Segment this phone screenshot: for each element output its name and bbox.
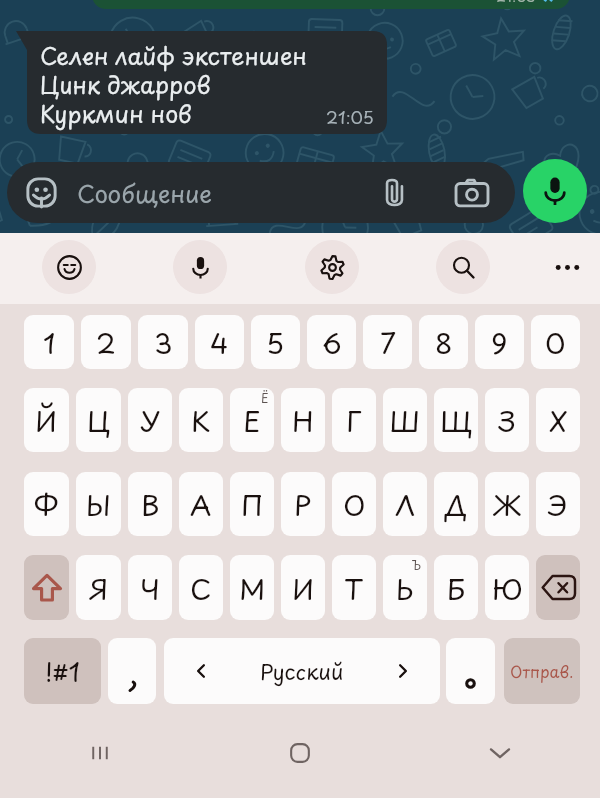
button[interactable]: Н [281, 388, 325, 452]
button[interactable]: 7 [363, 315, 412, 369]
staticText: О [343, 483, 366, 525]
button[interactable]: !#1 [24, 638, 101, 704]
button[interactable]: Голосовое сообщение [523, 159, 587, 223]
staticText: 6 [322, 321, 342, 363]
button[interactable]: 5 [251, 315, 300, 369]
button[interactable]: Ж [485, 472, 529, 536]
button[interactable]: Назад [400, 715, 600, 791]
button[interactable]: Ч [128, 555, 172, 620]
button[interactable]: 2 [81, 315, 131, 369]
staticText: Ю [492, 567, 523, 609]
staticText: 3 [154, 321, 173, 363]
button[interactable]: Г [332, 388, 376, 452]
button[interactable]: Ещё [540, 240, 594, 294]
staticText: И [292, 567, 315, 609]
button[interactable]: Недавние [0, 715, 200, 791]
button[interactable] [446, 638, 495, 704]
staticText: 8 [435, 321, 453, 363]
button[interactable]: Домой [200, 715, 400, 791]
button[interactable]: Л [383, 472, 427, 536]
button[interactable] [108, 638, 156, 704]
staticText: Д [445, 483, 468, 525]
button[interactable]: Х [536, 388, 580, 452]
button[interactable]: Голосовой ввод [173, 240, 227, 294]
other: Прикрепить [379, 177, 410, 208]
staticText: Ф [34, 483, 59, 525]
staticText: !#1 [45, 652, 81, 691]
button[interactable]: Д [434, 472, 478, 536]
button[interactable]: У [128, 388, 172, 452]
button[interactable]: 0 [531, 315, 580, 369]
staticText: Ш [389, 399, 421, 441]
button[interactable]: Ф [24, 472, 69, 536]
staticText: 2 [96, 321, 116, 363]
staticText: Е [243, 399, 261, 441]
other: Стикеры [26, 177, 57, 208]
button[interactable]: А [179, 472, 223, 536]
staticText: В [141, 483, 160, 525]
button[interactable]: Стикеры [7, 162, 515, 223]
button[interactable]: Ш [383, 388, 427, 452]
button[interactable]: Э [536, 472, 580, 536]
button[interactable]: Б [434, 555, 478, 620]
button[interactable]: Эмодзи [42, 240, 96, 294]
button[interactable]: Щ [434, 388, 478, 452]
button[interactable]: Т [332, 555, 376, 620]
staticText: Ч [140, 567, 160, 609]
button[interactable]: 1 [24, 315, 74, 369]
button[interactable]: Поиск [436, 240, 490, 294]
button[interactable]: С [179, 555, 223, 620]
button[interactable]: Русский [164, 638, 440, 704]
staticText: Куркмин нов [40, 96, 192, 131]
button[interactable]: 6 [307, 315, 356, 369]
staticText: З [498, 399, 516, 441]
button[interactable]: О [332, 472, 376, 536]
staticText: 7 [380, 321, 396, 363]
staticText: Цинк джарров [40, 67, 211, 102]
button[interactable]: Ц [76, 388, 121, 452]
staticText: 0 [545, 321, 566, 363]
button[interactable]: Ю [485, 555, 529, 620]
button[interactable]: З [485, 388, 529, 452]
button[interactable]: К [179, 388, 223, 452]
staticText: Э [548, 483, 568, 525]
button[interactable]: 9 [475, 315, 524, 369]
button[interactable]: Верхний регистр [24, 555, 69, 620]
button[interactable]: Ь [383, 555, 427, 620]
staticText: Ё [261, 389, 269, 407]
staticText: Я [89, 567, 109, 609]
staticText: Й [35, 399, 58, 441]
staticText: Сообщение [77, 175, 379, 211]
button[interactable]: Р [281, 472, 325, 536]
staticText: Т [344, 567, 364, 609]
staticText: А [190, 483, 212, 525]
button[interactable]: 3 [138, 315, 188, 369]
button[interactable]: М [230, 555, 274, 620]
staticText: Ъ [412, 556, 422, 574]
staticText: Н [292, 399, 314, 441]
staticText: Ь [396, 567, 414, 609]
button[interactable]: Настройки [305, 240, 359, 294]
button[interactable]: Я [76, 555, 121, 620]
button[interactable]: 4 [195, 315, 244, 369]
button[interactable]: Удалить [536, 555, 580, 620]
staticText: 21:05 [326, 104, 374, 130]
button[interactable]: П [230, 472, 274, 536]
button[interactable]: В [128, 472, 172, 536]
staticText: Селен лайф экстеншен [40, 38, 308, 73]
staticText: М [239, 567, 266, 609]
button[interactable]: Е [230, 388, 274, 452]
button[interactable]: 8 [419, 315, 468, 369]
button[interactable]: Ы [76, 472, 121, 536]
staticText: С [190, 567, 212, 609]
button[interactable]: Й [24, 388, 69, 452]
staticText: Ж [493, 483, 521, 525]
button[interactable]: И [281, 555, 325, 620]
staticText: У [140, 399, 161, 441]
staticText: Л [395, 483, 416, 525]
staticText: Б [447, 567, 466, 609]
staticText: 1 [43, 321, 56, 363]
staticText: Ц [87, 399, 111, 441]
button[interactable]: Отправ. [504, 638, 580, 704]
staticText: Ы [86, 483, 112, 525]
